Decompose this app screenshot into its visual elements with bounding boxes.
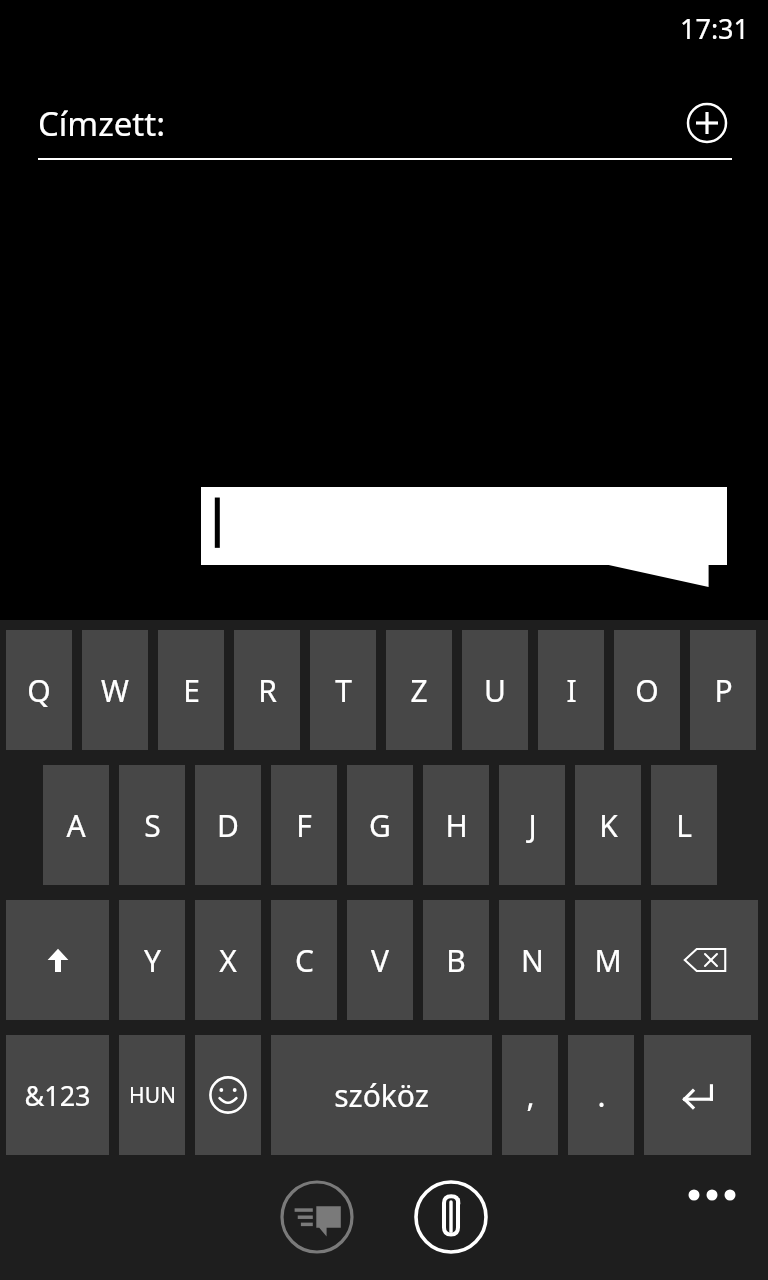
- button[interactable]: V: [347, 900, 413, 1020]
- staticText: T: [335, 670, 352, 711]
- button[interactable]: S: [119, 765, 185, 885]
- button[interactable]: Attach: [412, 1178, 490, 1256]
- button[interactable]: Z: [386, 630, 452, 750]
- button[interactable]: P: [690, 630, 756, 750]
- button[interactable]: L: [651, 765, 717, 885]
- button[interactable]: K: [575, 765, 641, 885]
- staticText: K: [599, 805, 618, 846]
- button[interactable]: Shift: [6, 900, 109, 1020]
- staticText: .: [597, 1075, 606, 1116]
- button[interactable]: HUN: [119, 1035, 185, 1155]
- staticText: F: [296, 805, 312, 846]
- button[interactable]: F: [271, 765, 337, 885]
- button[interactable]: G: [347, 765, 413, 885]
- staticText: O: [635, 670, 659, 711]
- staticText: U: [484, 670, 506, 711]
- staticText: HUN: [129, 1081, 176, 1110]
- staticText: W: [101, 670, 129, 711]
- button[interactable]: R: [234, 630, 300, 750]
- staticText: X: [219, 940, 237, 981]
- button[interactable]: J: [499, 765, 565, 885]
- button[interactable]: Add recipient: [684, 100, 730, 146]
- staticText: D: [217, 805, 239, 846]
- button[interactable]: C: [271, 900, 337, 1020]
- staticText: B: [446, 940, 466, 981]
- button[interactable]: H: [423, 765, 489, 885]
- button[interactable]: E: [158, 630, 224, 750]
- staticText: szóköz: [334, 1075, 429, 1116]
- button[interactable]: U: [462, 630, 528, 750]
- staticText: A: [66, 805, 86, 846]
- staticText: I: [566, 670, 577, 711]
- button[interactable]: Send: [278, 1178, 356, 1256]
- button[interactable]: Enter: [644, 1035, 751, 1155]
- button[interactable]: I: [538, 630, 604, 750]
- button[interactable]: &123: [6, 1035, 109, 1155]
- button[interactable]: W: [82, 630, 148, 750]
- button[interactable]: ,: [502, 1035, 558, 1155]
- staticText: V: [371, 940, 389, 981]
- staticText: ,: [526, 1075, 535, 1116]
- staticText: Y: [144, 940, 161, 981]
- staticText: M: [594, 940, 622, 981]
- button[interactable]: Y: [119, 900, 185, 1020]
- staticText: G: [369, 805, 391, 846]
- button[interactable]: T: [310, 630, 376, 750]
- button[interactable]: .: [568, 1035, 634, 1155]
- staticText: Z: [410, 670, 428, 711]
- staticText: N: [521, 940, 544, 981]
- button[interactable]: Emoji: [195, 1035, 261, 1155]
- button[interactable]: B: [423, 900, 489, 1020]
- staticText: Q: [27, 670, 51, 711]
- staticText: R: [258, 670, 277, 711]
- button[interactable]: Q: [6, 630, 72, 750]
- button[interactable]: N: [499, 900, 565, 1020]
- staticText: S: [144, 805, 161, 846]
- button[interactable]: M: [575, 900, 641, 1020]
- staticText: E: [183, 670, 200, 711]
- staticText: C: [295, 940, 314, 981]
- staticText: &123: [24, 1077, 91, 1114]
- staticText: P: [714, 670, 733, 711]
- button[interactable]: More options: [672, 1168, 752, 1222]
- button[interactable]: X: [195, 900, 261, 1020]
- button[interactable]: Backspace: [651, 900, 758, 1020]
- staticText: 17:31: [680, 10, 750, 47]
- staticText: L: [676, 805, 692, 846]
- staticText: H: [445, 805, 468, 846]
- button[interactable]: szóköz: [271, 1035, 492, 1155]
- button[interactable]: O: [614, 630, 680, 750]
- staticText: J: [528, 805, 537, 846]
- button[interactable]: A: [43, 765, 109, 885]
- button[interactable]: D: [195, 765, 261, 885]
- staticText: Címzett:: [38, 101, 166, 146]
